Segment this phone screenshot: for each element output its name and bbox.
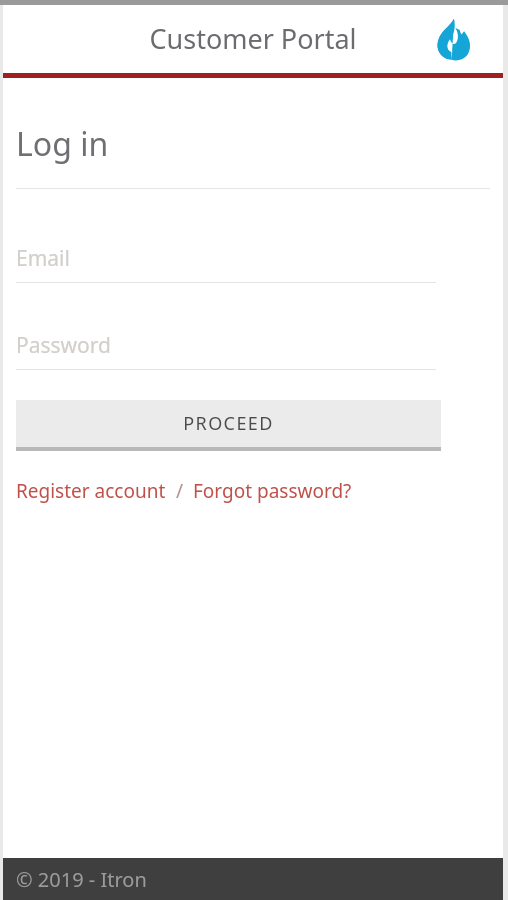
- staticText: Register account: [16, 478, 166, 504]
- button[interactable]: Password: [16, 331, 436, 370]
- staticText: Log in: [16, 122, 109, 166]
- button[interactable]: Register account: [16, 478, 166, 504]
- staticText: Password: [16, 331, 111, 360]
- staticText: Email: [16, 244, 70, 273]
- button[interactable]: Itron logo: [431, 16, 477, 62]
- staticText: /: [166, 478, 193, 504]
- button[interactable]: PROCEED: [16, 400, 441, 451]
- button[interactable]: Forgot password?: [193, 478, 352, 504]
- staticText: Forgot password?: [193, 478, 352, 504]
- staticText: Customer Portal: [149, 20, 357, 57]
- button[interactable]: Email: [16, 244, 436, 283]
- staticText: PROCEED: [183, 411, 274, 436]
- staticText: © 2019 - Itron: [16, 866, 147, 893]
